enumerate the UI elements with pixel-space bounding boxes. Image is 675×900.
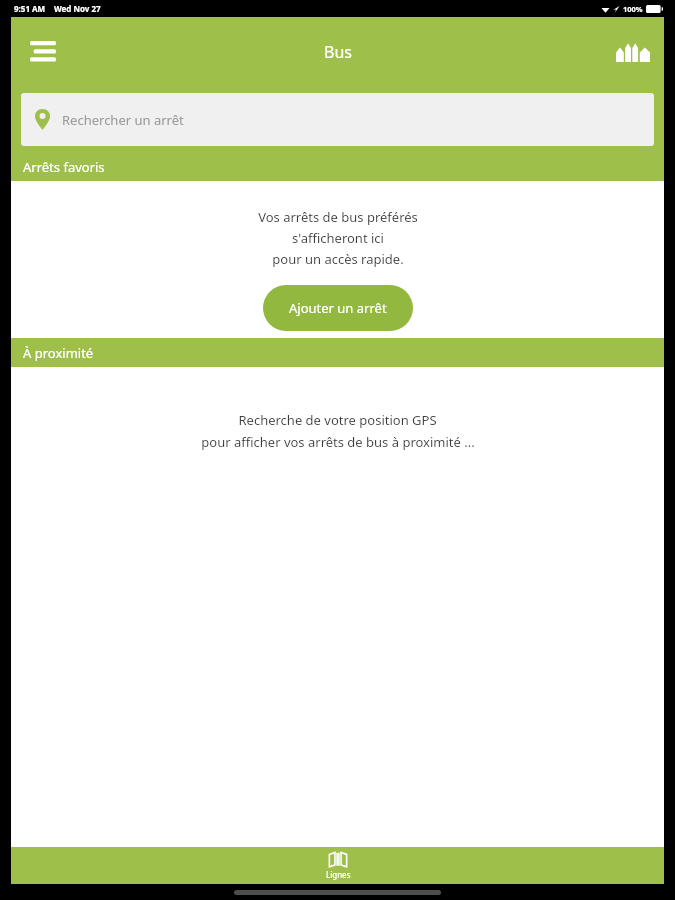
button[interactable]: Villes <box>610 29 656 75</box>
staticText: s'afficheront ici <box>292 229 384 247</box>
staticText: Rechercher un arrêt <box>62 111 184 129</box>
staticText: Wed Nov 27 <box>54 3 101 14</box>
button[interactable]: Rechercher un arrêt <box>21 93 654 146</box>
staticText: Bus <box>324 41 352 63</box>
staticText: Vos arrêts de bus préférés <box>258 208 418 226</box>
staticText: 9:51 AM <box>14 3 46 14</box>
staticText: 100% <box>623 4 643 14</box>
staticText: Recherche de votre position GPS <box>238 411 437 429</box>
staticText: À proximité <box>23 344 94 362</box>
staticText: pour un accès rapide. <box>272 250 404 268</box>
button[interactable]: Menu <box>21 30 65 74</box>
staticText: pour afficher vos arrêts de bus à proxim… <box>201 433 475 451</box>
staticText: Ajouter un arrêt <box>289 299 387 317</box>
button[interactable]: Ajouter un arrêt <box>263 285 413 331</box>
button[interactable]: Lignes <box>283 847 393 884</box>
staticText: Arrêts favoris <box>23 158 105 176</box>
staticText: Lignes <box>326 869 351 880</box>
